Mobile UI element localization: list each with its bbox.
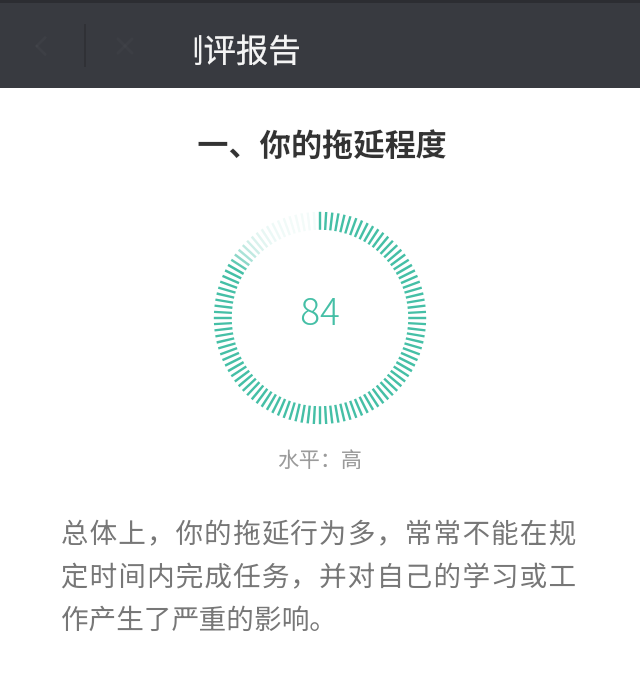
- staticText: 总体上，你的拖延行为多，常常不能在规定时间内完成任务，并对自己的学习或工作产生了…: [61, 511, 576, 637]
- staticText: 84: [0, 282, 640, 336]
- staticText: 一、你的拖延程度: [2, 120, 640, 165]
- staticText: 测评报告: [171, 24, 302, 71]
- staticText: 水平：高: [0, 443, 640, 473]
